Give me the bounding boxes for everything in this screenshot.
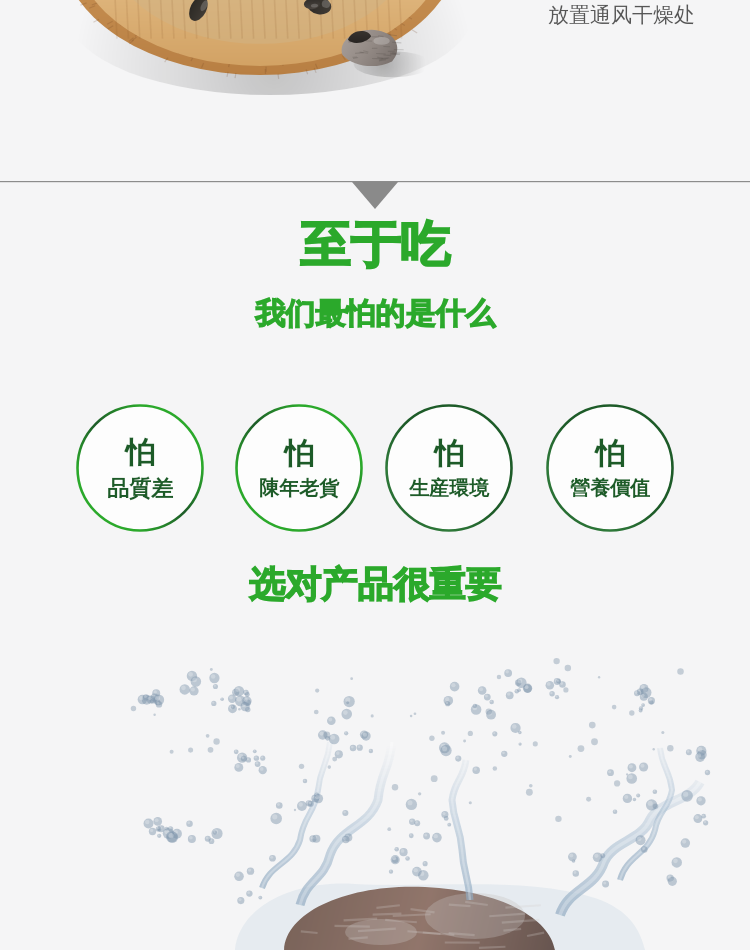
staticText: 放置通风干燥处	[548, 2, 695, 28]
staticText: 怕	[284, 435, 314, 473]
staticText: 怕	[434, 435, 464, 473]
staticText: 生産環境	[409, 476, 489, 501]
button[interactable]: 放置通风干燥处	[548, 2, 695, 28]
staticText: 我们最怕的是什么	[255, 295, 495, 333]
staticText: 选对产品很重要	[249, 562, 501, 607]
button[interactable]: 怕 品質差	[76, 404, 204, 532]
staticText: 怕	[125, 434, 155, 472]
staticText: 陳年老貨	[259, 476, 339, 501]
button[interactable]: 怕 生産環境	[385, 404, 513, 532]
staticText: 至于吃	[300, 214, 450, 277]
button[interactable]: 怕 陳年老貨	[235, 404, 363, 532]
staticText: 怕	[595, 435, 625, 473]
staticText: 品質差	[107, 475, 173, 503]
staticText: 營養價值	[570, 476, 650, 501]
button[interactable]: 选对产品很重要	[249, 562, 501, 607]
button[interactable]: 怕 營養價值	[546, 404, 674, 532]
